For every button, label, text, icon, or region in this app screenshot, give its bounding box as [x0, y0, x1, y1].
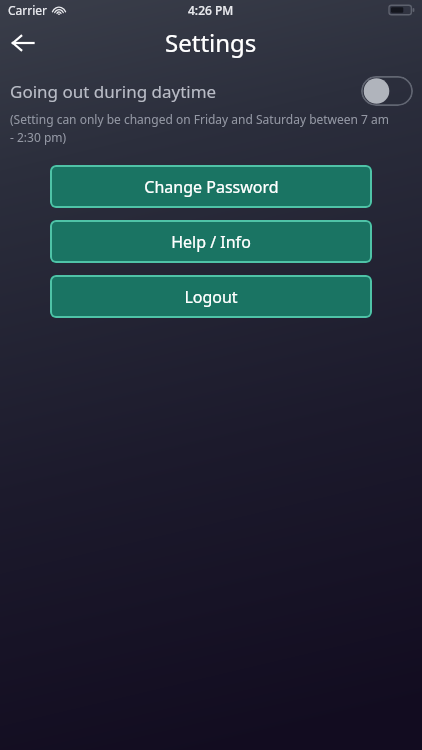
- button[interactable]: Going out during daytime toggle: [361, 76, 413, 106]
- staticText: 4:26 PM: [188, 2, 234, 18]
- button[interactable]: Help / Info: [50, 220, 372, 263]
- button[interactable]: Back: [0, 20, 46, 65]
- staticText: (Setting can only be changed on Friday a…: [10, 111, 392, 146]
- staticText: Logout: [184, 286, 238, 308]
- button[interactable]: Logout: [50, 275, 372, 318]
- staticText: Help / Info: [171, 231, 251, 253]
- button[interactable]: Change Password: [50, 165, 372, 208]
- staticText: Change Password: [144, 176, 279, 198]
- staticText: Settings: [165, 26, 257, 59]
- staticText: Carrier: [8, 2, 48, 18]
- staticText: Going out during daytime: [10, 80, 217, 103]
